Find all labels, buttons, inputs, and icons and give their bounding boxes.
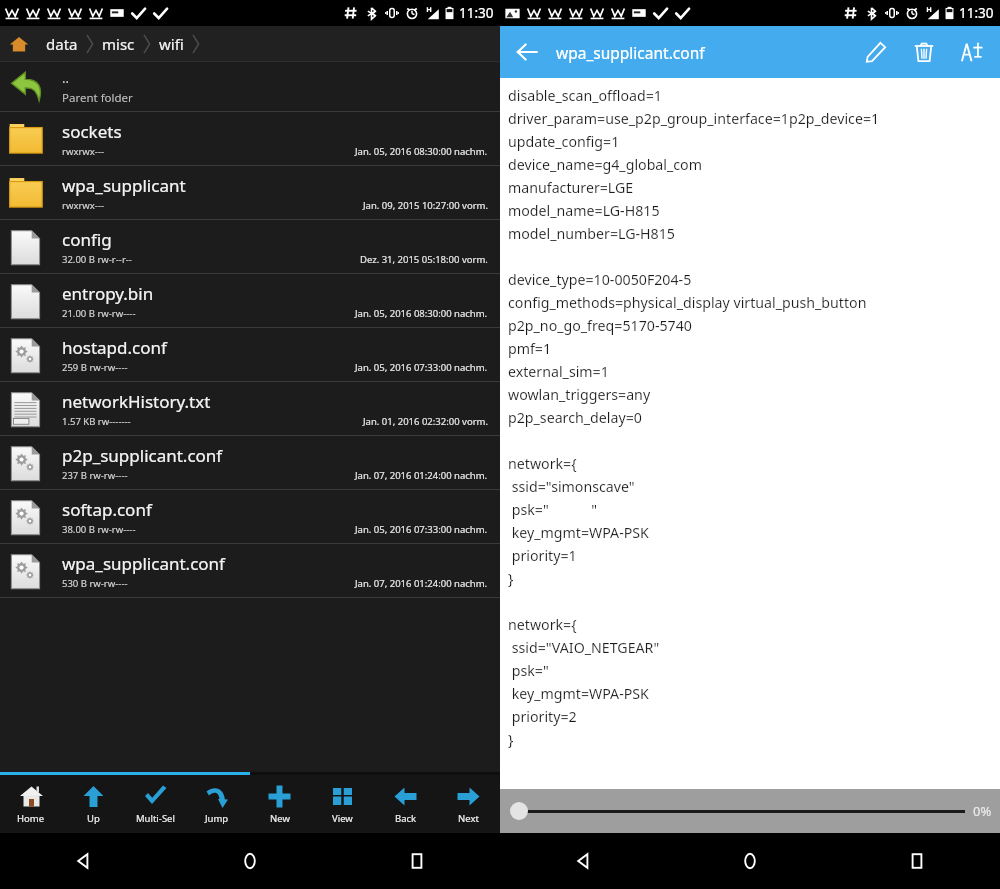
button[interactable]: hostapd.conf xyxy=(0,328,500,382)
button[interactable]: Translate xyxy=(954,34,990,70)
staticText: Parent folder xyxy=(62,90,133,106)
button[interactable]: New xyxy=(248,775,311,833)
staticText: 11:30 xyxy=(959,4,994,22)
staticText: 32.00 B rw-r--r-- xyxy=(62,253,132,266)
staticText: Jan. 05, 2016 07:33:00 nachm. xyxy=(355,523,488,536)
staticText: device_name=g4_global_com xyxy=(508,155,702,174)
staticText: sockets xyxy=(62,120,122,143)
staticText: wowlan_triggers=any xyxy=(508,385,651,404)
staticText: rwxrwx--- xyxy=(62,145,105,158)
staticText: model_number=LG-H815 xyxy=(508,224,675,243)
button[interactable]: Back xyxy=(500,833,666,889)
staticText: model_name=LG-H815 xyxy=(508,201,660,220)
button[interactable]: .. xyxy=(0,62,500,112)
staticText: wpa_supplicant xyxy=(62,174,186,197)
staticText: Multi-Sel xyxy=(136,812,175,825)
staticText: key_mgmt=WPA-PSK xyxy=(508,523,649,542)
button[interactable]: Recents xyxy=(833,833,1000,889)
staticText: device_type=10-0050F204-5 xyxy=(508,270,692,289)
button[interactable]: Root xyxy=(8,33,30,55)
button[interactable]: entropy.bin xyxy=(0,274,500,328)
button[interactable]: Jump xyxy=(186,775,248,833)
staticText: .. xyxy=(62,69,69,87)
staticText: psk=" xyxy=(508,661,549,680)
staticText: 259 B rw-rw---- xyxy=(62,361,128,374)
staticText: driver_param=use_p2p_group_interface=1p2… xyxy=(508,109,880,128)
staticText: disable_scan_offload=1 xyxy=(508,86,662,105)
staticText: 11:30 xyxy=(459,4,494,22)
staticText: 0% xyxy=(973,802,992,820)
staticText: softap.conf xyxy=(62,498,152,521)
staticText: 38.00 B rw-rw---- xyxy=(62,523,136,536)
staticText: Home xyxy=(17,812,45,825)
button[interactable]: wpa_supplicant xyxy=(0,166,500,220)
button[interactable]: p2p_supplicant.conf xyxy=(0,436,500,490)
button[interactable]: Delete xyxy=(906,34,942,70)
staticText: network={ xyxy=(508,454,577,473)
staticText: } xyxy=(508,569,514,588)
button[interactable]: Edit xyxy=(858,34,894,70)
button[interactable]: misc xyxy=(96,30,141,58)
staticText: pmf=1 xyxy=(508,339,552,358)
staticText: ssid="simonscave" xyxy=(508,477,635,496)
staticText: Next xyxy=(458,812,479,825)
button[interactable]: config xyxy=(0,220,500,274)
staticText: wifi xyxy=(159,34,184,54)
staticText: Jan. 09, 2015 10:27:00 vorm. xyxy=(363,199,488,212)
staticText: Jan. 05, 2016 08:30:00 nachm. xyxy=(355,145,488,158)
staticText: Back xyxy=(395,812,417,825)
staticText: ssid="VAIO_NETGEAR" xyxy=(508,638,660,657)
staticText: Jan. 05, 2016 08:30:00 nachm. xyxy=(355,307,488,320)
button[interactable]: Home xyxy=(666,833,833,889)
staticText: p2p_search_delay=0 xyxy=(508,408,642,427)
staticText: } xyxy=(508,730,514,749)
button[interactable]: 0% xyxy=(500,789,1000,833)
staticText: entropy.bin xyxy=(62,282,154,305)
staticText: key_mgmt=WPA-PSK xyxy=(508,684,649,703)
staticText: New xyxy=(270,812,290,825)
staticText: Jan. 05, 2016 07:33:00 nachm. xyxy=(355,361,488,374)
button[interactable]: Back xyxy=(510,35,544,69)
staticText: config xyxy=(62,228,112,251)
staticText: p2p_supplicant.conf xyxy=(62,444,223,467)
staticText: priority=1 xyxy=(508,546,577,565)
button[interactable]: data xyxy=(40,30,84,58)
button[interactable]: View xyxy=(311,775,374,833)
staticText: Jan. 01, 2016 02:32:00 vorm. xyxy=(363,415,488,428)
staticText: Jan. 07, 2016 01:24:00 nachm. xyxy=(355,577,488,590)
staticText: network={ xyxy=(508,615,577,634)
button[interactable]: wpa_supplicant.conf xyxy=(0,544,500,598)
staticText: 1.57 KB rw------- xyxy=(62,415,131,428)
staticText: wpa_supplicant.conf xyxy=(62,552,225,575)
staticText: Jan. 07, 2016 01:24:00 nachm. xyxy=(355,469,488,482)
button[interactable]: networkHistory.txt xyxy=(0,382,500,436)
staticText: priority=2 xyxy=(508,707,577,726)
staticText: Jump xyxy=(205,812,229,825)
staticText: config_methods=physical_display virtual_… xyxy=(508,293,867,312)
button[interactable]: Up xyxy=(62,775,124,833)
button[interactable]: wifi xyxy=(153,30,190,58)
staticText: Up xyxy=(87,812,100,825)
staticText: rwxrwx--- xyxy=(62,199,105,212)
button[interactable]: Recents xyxy=(333,833,500,889)
staticText: View xyxy=(332,812,353,825)
button[interactable]: sockets xyxy=(0,112,500,166)
button[interactable]: Back xyxy=(0,833,166,889)
staticText: manufacturer=LGE xyxy=(508,178,634,197)
button[interactable]: Back xyxy=(374,775,437,833)
staticText: data xyxy=(46,34,78,54)
staticText: 530 B rw-rw---- xyxy=(62,577,128,590)
staticText: 237 B rw-rw---- xyxy=(62,469,128,482)
staticText: wpa_supplicant.conf xyxy=(556,42,705,63)
button[interactable]: Multi-Sel xyxy=(124,775,186,833)
staticText: Dez. 31, 2015 05:18:00 vorm. xyxy=(360,253,488,266)
button[interactable]: Next xyxy=(437,775,500,833)
staticText: p2p_no_go_freq=5170-5740 xyxy=(508,316,692,335)
button[interactable]: softap.conf xyxy=(0,490,500,544)
button[interactable]: Home xyxy=(166,833,333,889)
staticText: 21.00 B rw-rw---- xyxy=(62,307,136,320)
staticText: misc xyxy=(102,34,135,54)
staticText: hostapd.conf xyxy=(62,336,167,359)
staticText: networkHistory.txt xyxy=(62,390,211,413)
button[interactable]: Home xyxy=(0,775,62,833)
